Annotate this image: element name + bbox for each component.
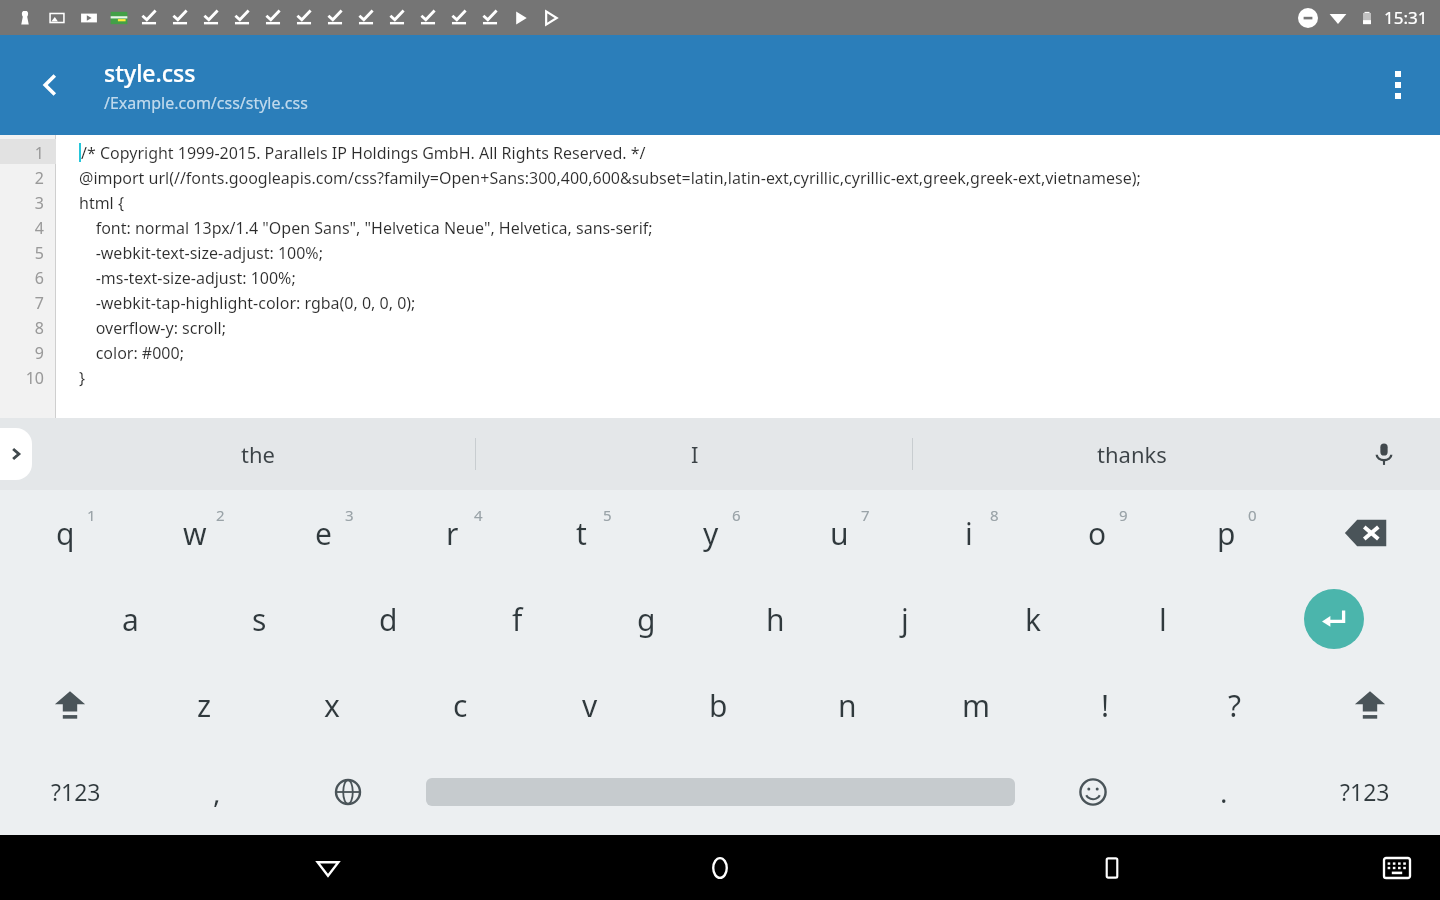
staticText: style.css xyxy=(104,57,196,88)
staticText: y xyxy=(703,513,719,554)
button[interactable]: Expand toolbar xyxy=(0,428,32,480)
staticText: o xyxy=(1088,513,1107,554)
button[interactable]: thanks xyxy=(913,418,1350,490)
staticText: 7 xyxy=(861,505,870,525)
staticText: 2 xyxy=(216,505,225,525)
staticText: ! xyxy=(1101,685,1110,726)
button[interactable]: 1 xyxy=(0,135,1440,418)
button[interactable]: y xyxy=(646,490,775,576)
staticText: 6 xyxy=(34,267,44,289)
staticText: n xyxy=(838,685,857,726)
button[interactable]: s xyxy=(195,576,324,662)
staticText: c xyxy=(453,685,468,726)
staticText: r xyxy=(446,513,459,554)
button[interactable]: j xyxy=(840,576,969,662)
staticText: thanks xyxy=(1097,439,1167,469)
button[interactable]: Shift xyxy=(1299,662,1440,748)
staticText: the xyxy=(241,439,275,469)
staticText: ?123 xyxy=(51,776,101,807)
button[interactable]: x xyxy=(268,662,396,748)
button[interactable]: l xyxy=(1098,576,1227,662)
button[interactable]: I xyxy=(476,418,913,490)
button[interactable]: o xyxy=(1033,490,1162,576)
button[interactable]: e xyxy=(259,490,388,576)
button[interactable]: ? xyxy=(1170,662,1299,748)
button[interactable]: Enter xyxy=(1227,576,1440,662)
staticText: v xyxy=(582,685,598,726)
staticText: e xyxy=(315,513,332,554)
button[interactable]: c xyxy=(396,662,525,748)
button[interactable]: f xyxy=(453,576,582,662)
button[interactable]: Switch keyboard xyxy=(1372,843,1422,893)
button[interactable]: Voice input xyxy=(1360,430,1408,478)
button[interactable]: i xyxy=(904,490,1033,576)
staticText: d xyxy=(379,599,398,640)
button[interactable]: w xyxy=(130,490,259,576)
staticText: 7 xyxy=(34,292,44,314)
button[interactable]: u xyxy=(775,490,904,576)
staticText: m xyxy=(962,685,991,726)
button[interactable]: ! xyxy=(1041,662,1170,748)
button[interactable]: h xyxy=(711,576,840,662)
staticText: g xyxy=(637,599,656,640)
button[interactable]: v xyxy=(525,662,654,748)
button[interactable]: Home xyxy=(692,840,748,896)
staticText: -webkit-text-size-adjust: 100%; xyxy=(79,242,323,264)
button[interactable]: Space xyxy=(413,748,1027,835)
staticText: html { xyxy=(79,192,124,214)
staticText: 9 xyxy=(1119,505,1128,525)
staticText: 4 xyxy=(474,505,483,525)
staticText: u xyxy=(830,513,849,554)
button[interactable]: q xyxy=(0,490,130,576)
staticText: , xyxy=(213,773,221,811)
button[interactable]: Back xyxy=(22,57,78,113)
button[interactable]: g xyxy=(582,576,711,662)
staticText: t xyxy=(576,513,587,554)
button[interactable]: Change language xyxy=(282,748,413,835)
staticText: ?123 xyxy=(1340,776,1390,807)
staticText: k xyxy=(1025,599,1042,640)
staticText: 3 xyxy=(345,505,354,525)
staticText: s xyxy=(252,599,267,640)
staticText: w xyxy=(183,513,207,554)
button[interactable]: . xyxy=(1158,748,1289,835)
staticText: I xyxy=(691,439,699,469)
staticText: font: normal 13px/1.4 "Open Sans", "Helv… xyxy=(79,217,653,239)
button[interactable]: m xyxy=(912,662,1041,748)
button[interactable]: ?123 xyxy=(0,748,151,835)
button[interactable]: b xyxy=(654,662,783,748)
button[interactable]: a xyxy=(66,576,195,662)
button[interactable]: Backspace xyxy=(1291,490,1440,576)
staticText: ? xyxy=(1228,685,1242,726)
button[interactable]: p xyxy=(1162,490,1291,576)
button[interactable]: z xyxy=(140,662,268,748)
button[interactable]: More options xyxy=(1370,57,1426,113)
staticText: 8 xyxy=(990,505,999,525)
button[interactable]: , xyxy=(151,748,282,835)
staticText: @import url(//fonts.googleapis.com/css?f… xyxy=(79,167,1141,189)
button[interactable]: d xyxy=(324,576,453,662)
button[interactable]: k xyxy=(969,576,1098,662)
button[interactable]: ?123 xyxy=(1289,748,1440,835)
button[interactable]: t xyxy=(517,490,646,576)
staticText: 5 xyxy=(34,242,44,264)
staticText: 6 xyxy=(732,505,741,525)
staticText: h xyxy=(766,599,785,640)
button[interactable]: the xyxy=(40,418,476,490)
staticText: l xyxy=(1159,599,1167,640)
staticText: a xyxy=(122,599,139,640)
button[interactable]: r xyxy=(388,490,517,576)
button[interactable]: n xyxy=(783,662,912,748)
staticText: 5 xyxy=(603,505,612,525)
staticText: 10 xyxy=(25,367,44,389)
staticText: } xyxy=(79,367,86,389)
staticText: b xyxy=(709,685,728,726)
button[interactable]: Emoji xyxy=(1027,748,1158,835)
staticText: color: #000; xyxy=(79,342,184,364)
button[interactable]: Recent apps xyxy=(1084,840,1140,896)
staticText: /* Copyright 1999-2015. Parallels IP Hol… xyxy=(81,142,646,164)
staticText: z xyxy=(197,685,212,726)
staticText: 9 xyxy=(34,342,44,364)
button[interactable]: Back xyxy=(300,840,356,896)
button[interactable]: Shift xyxy=(0,662,140,748)
